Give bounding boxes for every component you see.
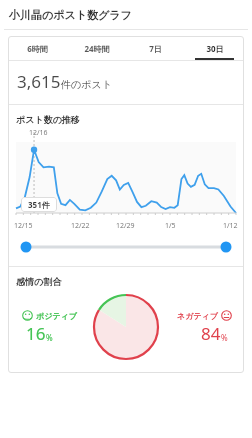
staticText: 16 [26,322,46,345]
staticText: 1/5 [165,221,176,231]
staticText: 12/29 [116,221,135,231]
staticText: 件のポスト [61,78,112,91]
staticText: ポスト数の推移 [16,114,80,125]
button[interactable]: 30日 [185,36,244,60]
button[interactable]: 24時間 [67,36,126,60]
staticText: 24時間 [84,43,110,54]
staticText: 小川晶のポスト数グラフ [9,8,132,22]
staticText: 7日 [149,43,162,54]
button[interactable]: 7日 [126,36,185,60]
staticText: 84 [201,322,221,345]
staticText: 12/16 [29,128,48,138]
staticText: 感情の割合 [16,276,62,287]
button[interactable]: 日付範囲スライダー [8,237,244,257]
staticText: 3,615 [17,70,61,93]
staticText: ポジティブ [36,311,77,321]
staticText: 30日 [206,43,224,54]
staticText: 12/15 [14,221,33,231]
staticText: 12/22 [71,221,90,231]
staticText: 1/12 [223,221,238,231]
staticText: % [221,332,228,343]
button[interactable]: 6時間 [8,36,67,60]
staticText: ネガティブ [177,311,218,321]
staticText: % [46,332,53,343]
staticText: 6時間 [27,43,48,54]
staticText: 351件 [28,199,50,210]
